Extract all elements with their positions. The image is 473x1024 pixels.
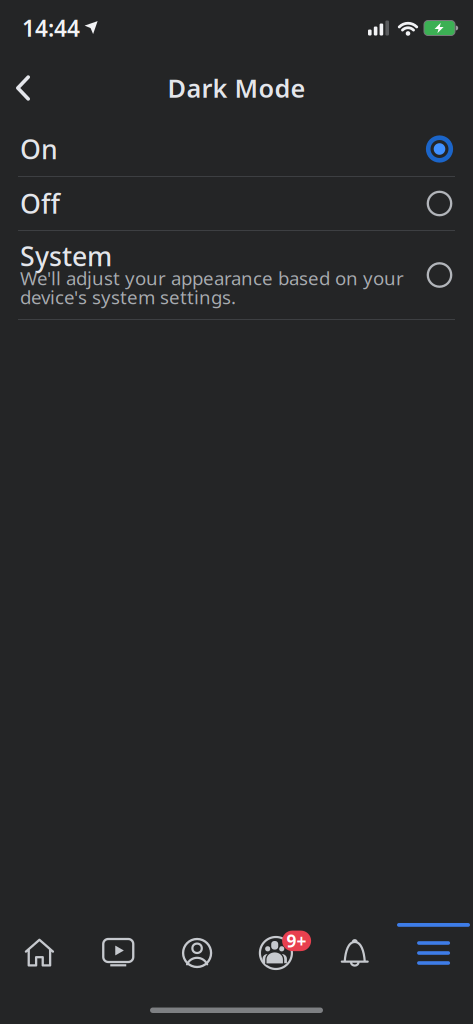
- button[interactable]: Video: [79, 931, 158, 975]
- staticText: Off: [20, 186, 60, 221]
- button[interactable]: Off: [0, 186, 473, 221]
- staticText: 9+: [287, 929, 307, 952]
- button[interactable]: Home: [0, 931, 79, 975]
- staticText: System: [20, 238, 112, 274]
- button[interactable]: Friends: [236, 931, 315, 975]
- button[interactable]: Menu: [394, 931, 473, 975]
- staticText: On: [20, 131, 58, 167]
- staticText: 14:44: [22, 13, 80, 43]
- staticText: We'll adjust your appearance based on yo…: [20, 266, 404, 290]
- staticText: Dark Mode: [167, 71, 305, 105]
- button[interactable]: Back: [0, 67, 50, 109]
- button[interactable]: System: [0, 243, 473, 306]
- button[interactable]: On: [0, 131, 473, 167]
- staticText: device's system settings.: [20, 285, 236, 309]
- button[interactable]: Notifications: [315, 931, 394, 975]
- button[interactable]: Profile: [158, 931, 236, 975]
